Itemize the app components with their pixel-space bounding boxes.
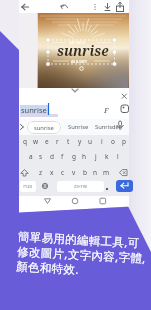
button[interactable]: ZH·TW (57, 181, 104, 192)
button[interactable] (19, 166, 31, 179)
staticText: e (45, 137, 49, 146)
button[interactable]: c (57, 166, 68, 179)
staticText: q (23, 137, 27, 146)
button[interactable] (96, 196, 109, 207)
button[interactable]: u (85, 135, 96, 148)
button[interactable]: a (25, 150, 36, 163)
staticText: w (33, 137, 39, 146)
staticText: 簡單易用的編輯工具,可 修改圖片,文字內容,字體, 顏色和特效. (16, 228, 147, 281)
staticText: f (61, 152, 64, 161)
staticText: r (56, 137, 59, 146)
button[interactable]: w (30, 135, 41, 148)
button[interactable]: Sunrise (64, 120, 92, 134)
button[interactable] (103, 180, 112, 192)
staticText: c (61, 168, 65, 177)
button[interactable]: l (112, 150, 123, 163)
button[interactable] (114, 1, 126, 13)
button[interactable] (68, 196, 82, 207)
staticText: p (122, 137, 126, 146)
staticText: ?123 (23, 184, 33, 190)
staticText: sunrise (21, 105, 47, 115)
staticText: F (104, 105, 109, 115)
button[interactable]: z (35, 166, 46, 179)
button[interactable]: o (107, 135, 118, 148)
button[interactable]: m (101, 166, 112, 179)
button[interactable]: h (79, 150, 90, 163)
button[interactable]: r (52, 135, 63, 148)
staticText: s (39, 152, 43, 161)
staticText: g (72, 152, 76, 161)
button[interactable] (58, 1, 70, 13)
staticText: o (111, 137, 115, 146)
staticText: Sunrise (68, 123, 89, 131)
staticText: x (50, 168, 54, 177)
button[interactable]: n (90, 166, 101, 179)
button[interactable] (119, 103, 130, 114)
button[interactable] (119, 91, 129, 101)
button[interactable] (69, 86, 81, 95)
staticText: z (39, 168, 43, 177)
button[interactable] (102, 1, 113, 13)
staticText: Sunrisden (95, 123, 123, 131)
button[interactable] (114, 119, 126, 133)
button[interactable] (19, 1, 31, 13)
button[interactable]: e (41, 135, 52, 148)
staticText: sunrise (34, 124, 54, 132)
button[interactable]: k (101, 150, 112, 163)
staticText: b (83, 168, 87, 177)
button[interactable]: f (57, 150, 68, 163)
button[interactable] (19, 120, 29, 134)
button[interactable]: y (74, 135, 85, 148)
button[interactable]: sunrise (27, 121, 61, 134)
staticText: d (50, 152, 54, 161)
staticText: y (78, 137, 82, 146)
button[interactable]: s (35, 150, 46, 163)
button[interactable]: j (90, 150, 101, 163)
staticText: a (29, 152, 33, 161)
button[interactable]: b (79, 166, 90, 179)
button[interactable] (39, 180, 51, 192)
staticText: m (103, 168, 110, 177)
staticText: j (95, 152, 97, 161)
staticText: t (67, 137, 70, 146)
button[interactable]: ?123 (20, 181, 36, 192)
button[interactable] (41, 196, 54, 207)
staticText: sunrise (57, 42, 109, 60)
button[interactable]: d (46, 150, 57, 163)
staticText: v (72, 168, 76, 177)
button[interactable]: q (19, 135, 30, 148)
staticText: l (117, 152, 119, 161)
button[interactable]: t (63, 135, 74, 148)
staticText: u (88, 137, 93, 146)
button[interactable]: i (96, 135, 107, 148)
button[interactable]: v (68, 166, 79, 179)
button[interactable]: Sunrisden (93, 120, 125, 134)
staticText: AS A GIFT (71, 59, 87, 64)
button[interactable] (116, 180, 133, 192)
button[interactable] (90, 1, 100, 13)
staticText: ZH·TW (74, 184, 87, 190)
button[interactable]: x (46, 166, 57, 179)
staticText: k (105, 152, 109, 161)
button[interactable] (100, 102, 111, 114)
button[interactable]: p (118, 135, 129, 148)
staticText: GET EACH (69, 40, 86, 45)
staticText: i (101, 137, 103, 146)
button[interactable] (117, 166, 129, 179)
staticText: h (82, 152, 87, 161)
staticText: n (93, 168, 98, 177)
button[interactable]: g (68, 150, 79, 163)
